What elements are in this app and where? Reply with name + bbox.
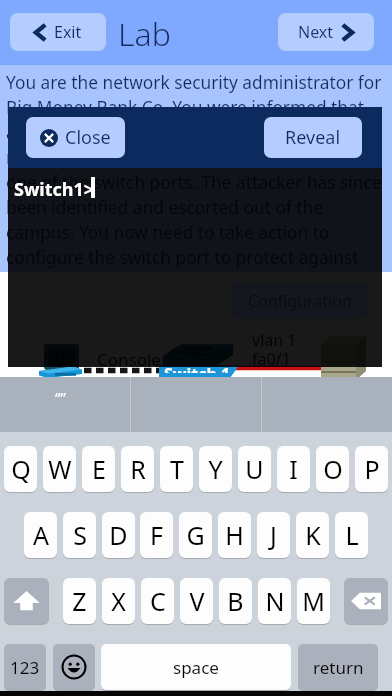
button[interactable]: C: [141, 578, 174, 624]
staticText: space: [173, 656, 219, 679]
staticText: M: [302, 584, 325, 618]
button[interactable]: H: [218, 512, 251, 558]
button[interactable]: Z: [63, 578, 96, 624]
button[interactable]: Close: [26, 117, 125, 158]
staticText: R: [130, 452, 146, 486]
staticText: Y: [208, 452, 223, 486]
button[interactable]: Emoji keyboard: [53, 644, 95, 690]
staticText: K: [305, 518, 321, 552]
button[interactable]: X: [102, 578, 135, 624]
button[interactable]: A: [24, 512, 57, 558]
staticText: G: [186, 518, 205, 552]
button[interactable]: M: [297, 578, 330, 624]
staticText: Switch 1: [164, 367, 231, 373]
button[interactable]: Reveal: [264, 117, 362, 158]
staticText: Lab: [118, 12, 171, 56]
button[interactable]: O: [316, 446, 349, 492]
button[interactable]: J: [257, 512, 290, 558]
staticText: A: [33, 518, 49, 552]
staticText: return: [313, 656, 364, 679]
button[interactable]: D: [102, 512, 135, 558]
button[interactable]: E: [82, 446, 115, 492]
staticText: V: [189, 584, 205, 618]
staticText: Next: [298, 21, 334, 43]
button[interactable]: I: [277, 446, 310, 492]
button[interactable]: Backspace: [344, 578, 388, 624]
button[interactable]: K: [296, 512, 329, 558]
staticText: D: [109, 518, 128, 552]
staticText: P: [364, 452, 380, 486]
staticText: H: [225, 518, 244, 552]
button[interactable]: T: [160, 446, 193, 492]
button[interactable]: U: [238, 446, 271, 492]
button[interactable]: space: [101, 644, 291, 690]
staticText: F: [150, 518, 163, 552]
staticText: E: [92, 452, 106, 486]
staticText: U: [245, 452, 264, 486]
staticText: Close: [65, 125, 111, 150]
button[interactable]: S: [63, 512, 96, 558]
button[interactable]: 123: [4, 644, 46, 690]
staticText: Configuration: [248, 290, 352, 312]
staticText: X: [111, 584, 126, 618]
staticText: C: [150, 584, 166, 618]
staticText: B: [227, 584, 244, 618]
staticText: Z: [72, 584, 87, 618]
button[interactable]: Next: [278, 13, 374, 51]
staticText: I: [289, 452, 298, 486]
staticText: J: [270, 518, 277, 552]
button[interactable]: W: [43, 446, 76, 492]
button[interactable]: Exit: [10, 13, 106, 51]
staticText: 123: [10, 656, 40, 679]
staticText: Q: [11, 452, 31, 486]
button[interactable]: Q: [4, 446, 37, 492]
staticText: Reveal: [285, 125, 341, 150]
button[interactable]: return: [298, 644, 378, 690]
button[interactable]: Shift: [4, 578, 49, 624]
button[interactable]: N: [258, 578, 291, 624]
button[interactable]: R: [121, 446, 154, 492]
staticText: fa0/1: [252, 348, 291, 367]
staticText: T: [170, 452, 184, 486]
staticText: O: [323, 452, 343, 486]
staticText: Exit: [54, 21, 82, 43]
staticText: vlan 1: [252, 329, 297, 351]
staticText: W: [48, 452, 72, 486]
button[interactable]: G: [179, 512, 212, 558]
staticText: You are the network security administrat…: [6, 71, 384, 269]
staticText: Console: [97, 348, 161, 367]
staticText: S: [73, 518, 87, 552]
staticText: N: [265, 584, 285, 618]
button[interactable]: V: [180, 578, 213, 624]
staticText: L: [345, 518, 359, 552]
button[interactable]: B: [219, 578, 252, 624]
button[interactable]: F: [140, 512, 173, 558]
staticText: “”: [55, 387, 66, 407]
staticText: Switch 1: [164, 363, 231, 367]
button[interactable]: P: [355, 446, 388, 492]
button[interactable]: L: [335, 512, 368, 558]
staticText: Switch1>: [14, 177, 95, 202]
button[interactable]: Y: [199, 446, 232, 492]
